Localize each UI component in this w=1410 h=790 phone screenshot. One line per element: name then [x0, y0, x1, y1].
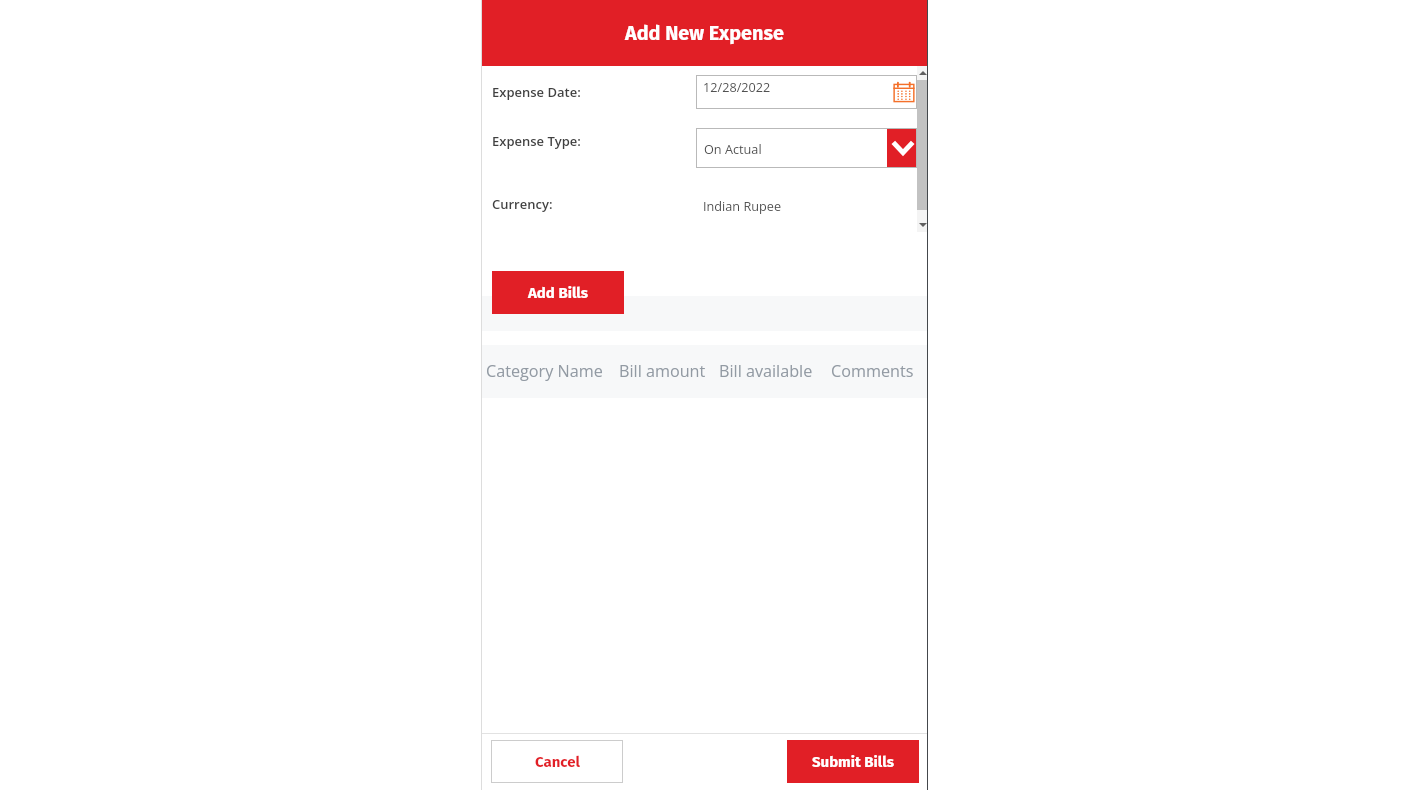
button[interactable]: Add Bills: [492, 271, 624, 314]
button[interactable]: Add New Expense: [481, 0, 928, 66]
staticText: Expense Type:: [492, 132, 581, 150]
staticText: Cancel: [535, 753, 580, 771]
staticText: Category Name: [486, 360, 603, 382]
button[interactable]: 12/28/2022: [696, 75, 917, 109]
button[interactable]: Scroll form: [917, 66, 928, 232]
staticText: 12/28/2022: [703, 78, 771, 95]
staticText: Bill available: [719, 360, 813, 382]
staticText: Currency:: [492, 195, 553, 213]
button[interactable]: On Actual: [696, 128, 917, 168]
button[interactable]: Open expense type list: [887, 129, 917, 167]
staticText: Bill amount: [619, 360, 706, 382]
staticText: Expense Date:: [492, 83, 581, 101]
staticText: Add Bills: [528, 284, 589, 302]
staticText: Submit Bills: [812, 753, 895, 771]
button[interactable]: Pick expense date: [893, 83, 915, 103]
staticText: Indian Rupee: [703, 197, 782, 214]
staticText: Comments: [831, 360, 914, 382]
staticText: On Actual: [704, 140, 762, 157]
button[interactable]: Cancel: [491, 740, 623, 783]
staticText: Add New Expense: [625, 21, 784, 45]
button[interactable]: Submit Bills: [787, 740, 919, 783]
